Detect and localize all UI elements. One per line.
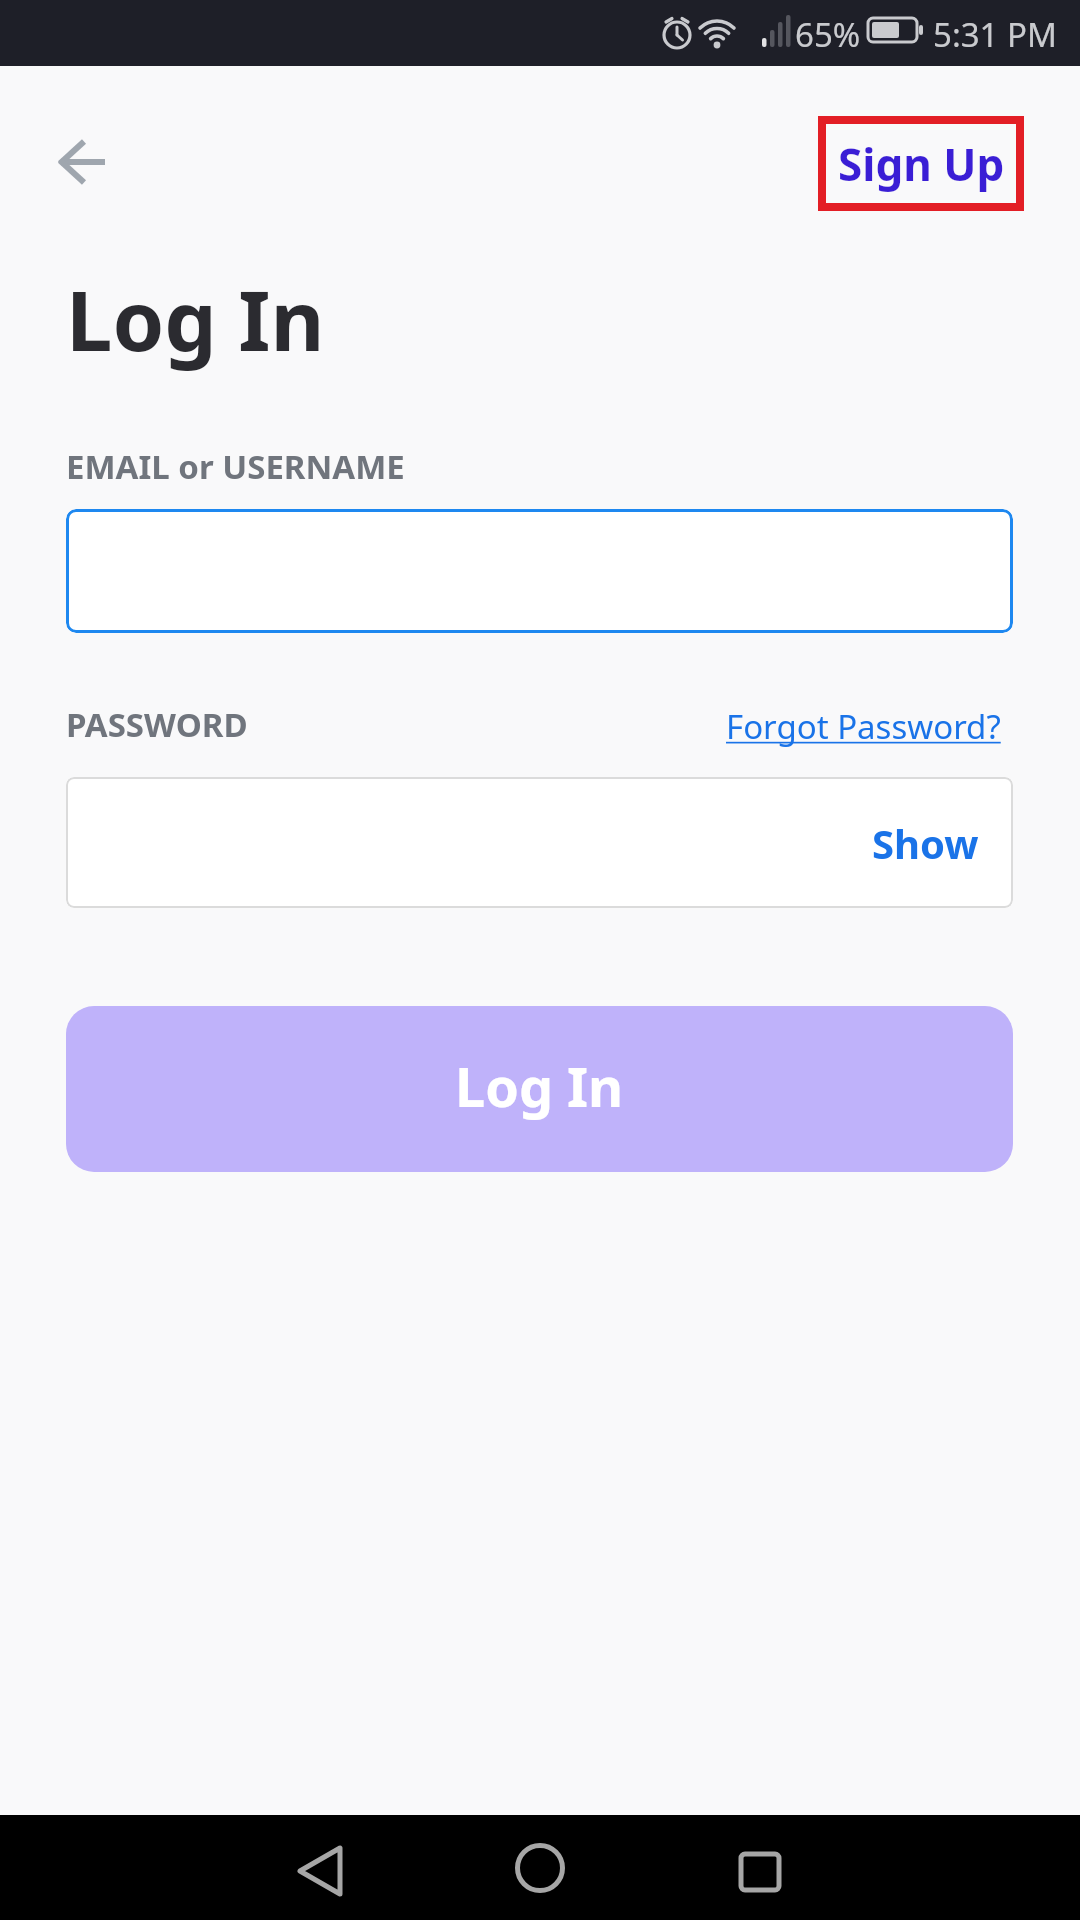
button[interactable]: Log In: [66, 1006, 1013, 1172]
button[interactable]: [56, 136, 108, 188]
button[interactable]: Forgot Password?: [726, 704, 1001, 749]
staticText: Log In: [455, 1049, 624, 1123]
staticText: EMAIL or USERNAME: [66, 444, 405, 489]
staticText: 65%: [795, 12, 861, 57]
staticText: Log In: [66, 262, 325, 375]
button[interactable]: [281, 1831, 361, 1911]
button[interactable]: [500, 1828, 580, 1908]
staticText: 5:31 PM: [933, 12, 1057, 57]
button[interactable]: Show: [66, 777, 1013, 908]
button[interactable]: [720, 1828, 800, 1908]
staticText: PASSWORD: [66, 702, 248, 747]
button[interactable]: Sign Up: [818, 116, 1024, 211]
button[interactable]: [66, 509, 1013, 633]
staticText: Sign Up: [838, 134, 1005, 194]
button[interactable]: Show: [872, 816, 979, 870]
